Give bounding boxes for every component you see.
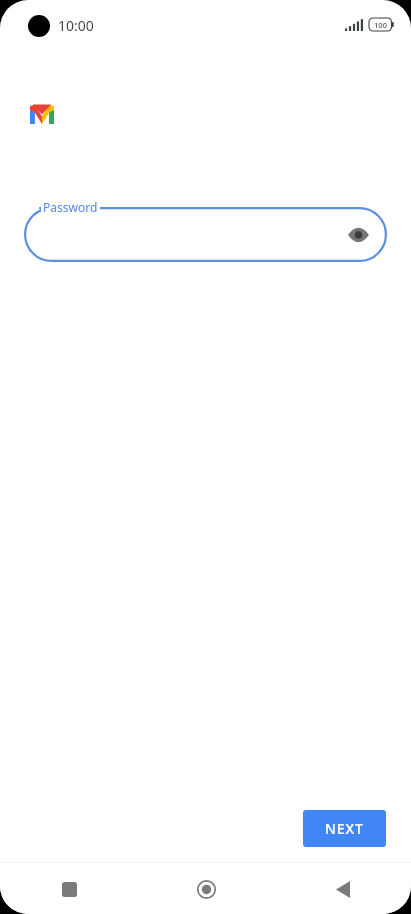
staticText: Password [43, 199, 98, 215]
button[interactable]: Show password [341, 218, 375, 252]
button[interactable]: Password [24, 207, 387, 262]
staticText: NEXT [325, 819, 364, 838]
staticText: 100 [374, 20, 387, 30]
button[interactable]: Back [319, 865, 367, 913]
button[interactable]: Home [182, 865, 230, 913]
button[interactable]: NEXT [303, 810, 386, 847]
staticText: 10:00 [58, 16, 94, 35]
button[interactable]: Recent apps [45, 865, 93, 913]
